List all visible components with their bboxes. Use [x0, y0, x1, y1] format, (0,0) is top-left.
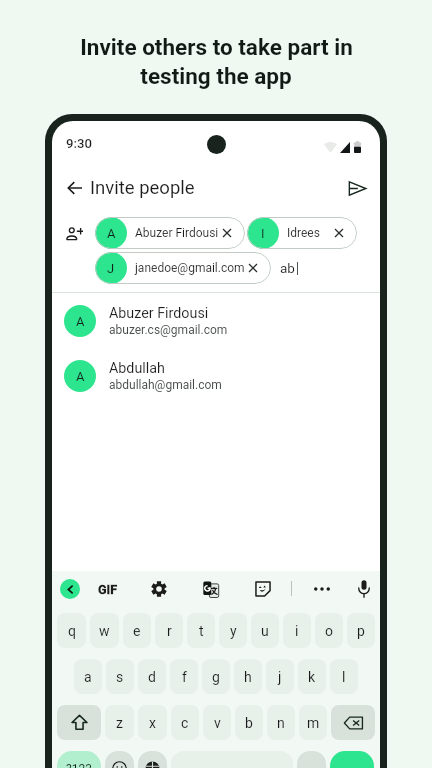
button[interactable]: Stickers [251, 577, 275, 601]
button[interactable]: Expand toolbar [58, 577, 82, 601]
staticText: A [76, 314, 85, 329]
button[interactable]: u [251, 613, 279, 648]
button[interactable]: y [219, 613, 247, 648]
staticText: m [307, 715, 320, 731]
staticText: f [182, 669, 187, 685]
button[interactable]: A [95, 217, 245, 249]
button[interactable]: a [74, 659, 102, 694]
button[interactable]: Send [343, 174, 371, 202]
button[interactable]: Backspace [331, 705, 375, 740]
button[interactable]: Voice input [352, 577, 376, 601]
button[interactable]: GIF [95, 576, 121, 602]
staticText: testing the app [140, 63, 292, 89]
staticText: t [199, 623, 204, 639]
staticText: ?123 [66, 762, 92, 768]
button[interactable]: x [138, 705, 167, 740]
staticText: J [107, 261, 115, 276]
staticText: q [68, 623, 76, 639]
staticText: x [149, 715, 156, 731]
button[interactable]: i [283, 613, 311, 648]
staticText: s [116, 669, 124, 685]
staticText: d [148, 669, 156, 685]
staticText: abdullah@gmail.com [109, 378, 222, 392]
button[interactable]: ?123 [57, 751, 101, 768]
staticText: Abdullah [109, 360, 165, 377]
staticText: abuzer.cs@gmail.com [109, 323, 228, 337]
staticText: p [357, 623, 365, 639]
staticText: Abuzer Firdousi [109, 305, 209, 322]
staticText: y [230, 623, 237, 639]
staticText: A [107, 226, 116, 241]
staticText: ab [280, 260, 295, 276]
staticText: l [342, 669, 346, 685]
button[interactable]: s [106, 659, 134, 694]
button[interactable]: m [299, 705, 327, 740]
staticText: j [278, 669, 282, 685]
staticText: 9:30 [66, 136, 92, 151]
button[interactable]: d [138, 659, 166, 694]
staticText: o [325, 623, 333, 639]
staticText: e [133, 623, 141, 639]
staticText: i [295, 623, 299, 639]
button[interactable]: t [187, 613, 215, 648]
button[interactable]: J [95, 252, 271, 284]
button[interactable]: k [298, 659, 326, 694]
staticText: n [277, 715, 285, 731]
button[interactable]: p [347, 613, 375, 648]
button[interactable]: h [234, 659, 262, 694]
button[interactable]: z [105, 705, 134, 740]
button[interactable]: g [202, 659, 230, 694]
staticText: Abuzer Firdousi [135, 226, 219, 240]
button[interactable]: More options [310, 577, 334, 601]
button[interactable]: I [247, 217, 357, 249]
button[interactable]: A [52, 348, 380, 403]
button[interactable]: Translate [199, 577, 223, 601]
staticText: A [76, 369, 85, 384]
button[interactable]: Settings [147, 577, 171, 601]
button[interactable]: w [90, 613, 119, 648]
button[interactable]: Back [61, 174, 89, 202]
staticText: w [99, 623, 110, 639]
button[interactable]: e [123, 613, 151, 648]
staticText: janedoe@gmail.com [135, 261, 245, 275]
button[interactable]: c [171, 705, 199, 740]
staticText: c [181, 715, 189, 731]
button[interactable]: n [267, 705, 295, 740]
staticText: h [244, 669, 252, 685]
button[interactable]: v [203, 705, 231, 740]
staticText: r [167, 623, 172, 639]
button[interactable]: Change language [138, 751, 167, 768]
button[interactable]: Shift [57, 705, 101, 740]
staticText: g [212, 669, 220, 685]
button[interactable]: Add person [60, 219, 88, 247]
staticText: v [214, 715, 221, 731]
staticText: Invite people [90, 177, 195, 199]
button[interactable]: o [315, 613, 343, 648]
button[interactable]: q [57, 613, 86, 648]
staticText: z [116, 715, 123, 731]
button[interactable]: f [170, 659, 198, 694]
button[interactable]: Period [297, 751, 326, 768]
button[interactable]: l [330, 659, 358, 694]
staticText: Invite others to take part in [80, 34, 353, 60]
button[interactable]: Enter [330, 751, 374, 768]
button[interactable]: b [235, 705, 263, 740]
staticText: I [261, 226, 265, 241]
staticText: k [308, 669, 316, 685]
button[interactable]: Emoji [105, 751, 134, 768]
button[interactable]: j [266, 659, 294, 694]
staticText: b [245, 715, 253, 731]
button[interactable]: r [155, 613, 183, 648]
staticText: a [84, 669, 92, 685]
staticText: Idrees [287, 226, 320, 240]
staticText: u [261, 623, 269, 639]
staticText: GIF [98, 582, 118, 597]
button[interactable]: A [52, 293, 380, 348]
